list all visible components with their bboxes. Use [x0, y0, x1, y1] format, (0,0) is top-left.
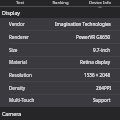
staticText: Multi-Touch — [9, 97, 35, 103]
button[interactable]: Renderer — [0, 31, 120, 44]
staticText: Retina display — [80, 59, 111, 65]
staticText: 264PPI — [96, 85, 111, 91]
staticText: Camera — [2, 110, 22, 117]
staticText: Resolution — [9, 72, 32, 78]
staticText: Density — [9, 85, 26, 91]
button[interactable]: Vendor — [0, 18, 120, 31]
staticText: Display — [2, 9, 21, 16]
staticText: Ranking — [52, 0, 69, 5]
button[interactable]: Density — [0, 82, 120, 95]
staticText: Support — [93, 97, 111, 103]
button[interactable]: Ranking — [40, 0, 80, 5]
staticText: Renderer — [9, 34, 29, 40]
staticText: Size — [9, 47, 18, 53]
staticText: Material — [9, 59, 27, 65]
staticText: Vendor — [9, 21, 25, 27]
button[interactable]: Resolution — [0, 69, 120, 82]
staticText: PowerVR G6650 — [76, 34, 111, 40]
staticText: Device Info — [89, 0, 111, 5]
button[interactable]: Size — [0, 44, 120, 57]
staticText: Imagination Technologies — [55, 21, 111, 27]
button[interactable]: Multi-Touch — [0, 95, 120, 107]
button[interactable]: Device Info — [80, 0, 120, 5]
staticText: Test — [16, 0, 24, 5]
staticText: 9.7-inch — [93, 47, 111, 53]
button[interactable]: Test — [0, 0, 40, 5]
button[interactable]: Material — [0, 57, 120, 69]
staticText: 1536 × 2048 — [84, 72, 111, 78]
